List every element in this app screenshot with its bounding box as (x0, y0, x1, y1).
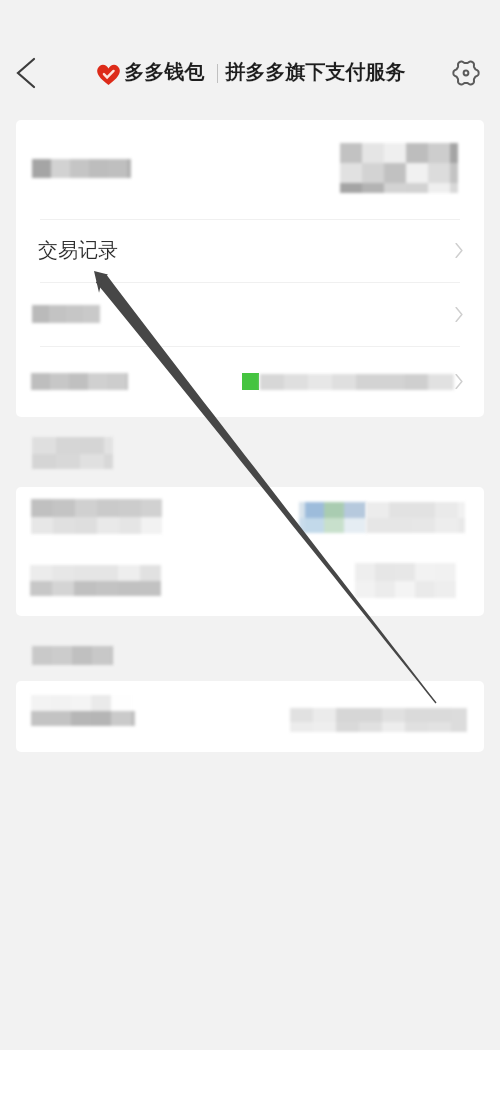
button[interactable]: 交易记录 (16, 219, 484, 282)
button[interactable] (16, 346, 484, 417)
staticText: 多多钱包 (124, 60, 204, 85)
button[interactable] (16, 553, 484, 616)
button[interactable]: Settings (446, 53, 486, 93)
button[interactable] (16, 282, 484, 346)
button[interactable]: Back (6, 53, 46, 93)
button[interactable] (16, 681, 484, 752)
staticText: 拼多多旗下支付服务 (225, 60, 405, 85)
staticText: 交易记录 (38, 238, 118, 263)
button[interactable] (16, 487, 484, 553)
